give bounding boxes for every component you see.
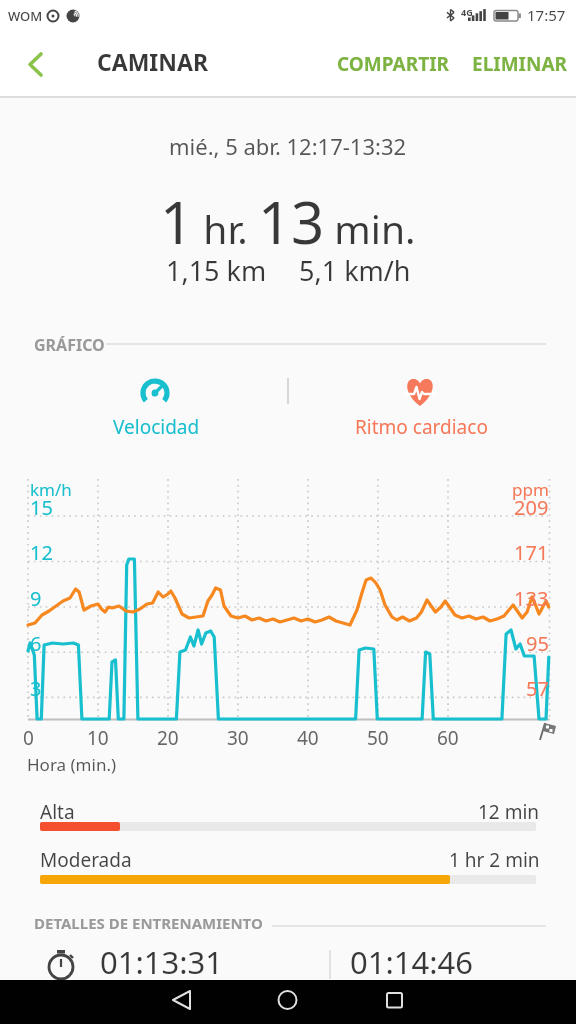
staticText: 171 xyxy=(514,539,549,566)
staticText: 0 xyxy=(23,725,34,751)
staticText: COMPARTIR xyxy=(337,51,450,77)
button[interactable]: Ritmo cardiaco xyxy=(352,366,490,440)
button[interactable] xyxy=(384,980,576,1024)
staticText: Alta xyxy=(40,799,75,825)
button[interactable] xyxy=(192,980,384,1024)
staticText: 4G xyxy=(461,6,473,18)
staticText: 01:14:46 xyxy=(350,941,474,983)
staticText: 20 xyxy=(157,725,179,751)
staticText: Velocidad xyxy=(113,414,200,440)
staticText: 209 xyxy=(514,494,549,521)
staticText: Hora (min.) xyxy=(27,753,117,776)
staticText: 1,15 km xyxy=(166,252,267,289)
staticText: 1 hr. 13 min. xyxy=(160,182,416,261)
button[interactable]: COMPARTIR xyxy=(330,46,443,72)
staticText: 6 xyxy=(30,630,42,657)
staticText: 12 min xyxy=(478,799,540,825)
staticText: 30 xyxy=(227,725,249,751)
staticText: 3 xyxy=(30,675,42,702)
staticText: 9 xyxy=(30,585,42,612)
button[interactable] xyxy=(14,42,60,88)
staticText: 15 xyxy=(30,494,53,521)
staticText: km/h xyxy=(30,478,72,501)
staticText: ppm xyxy=(512,478,549,501)
staticText: 40 xyxy=(297,725,319,751)
staticText: 95 xyxy=(526,630,549,657)
staticText: GRÁFICO xyxy=(34,334,105,356)
staticText: CAMINAR xyxy=(97,46,209,77)
staticText: 133 xyxy=(514,585,549,612)
button[interactable]: ELIMINAR xyxy=(465,46,561,72)
staticText: WOM xyxy=(8,7,43,25)
staticText: DETALLES DE ENTRENAMIENTO xyxy=(34,913,263,933)
staticText: 5,1 km/h xyxy=(299,252,411,289)
staticText: Ritmo cardiaco xyxy=(355,414,488,440)
staticText: 01:13:31 xyxy=(100,941,224,983)
button[interactable] xyxy=(0,980,192,1024)
staticText: Moderada xyxy=(40,847,132,873)
staticText: 17:57 xyxy=(527,5,566,25)
staticText: 12 xyxy=(30,539,53,566)
staticText: mié., 5 abr. 12:17-13:32 xyxy=(169,131,407,161)
staticText: 60 xyxy=(437,725,459,751)
staticText: 50 xyxy=(367,725,389,751)
button[interactable]: Velocidad xyxy=(90,366,222,440)
staticText: ELIMINAR xyxy=(472,51,568,77)
staticText: 10 xyxy=(87,725,109,751)
staticText: 1 hr 2 min xyxy=(449,847,540,873)
staticText: 57 xyxy=(526,675,549,702)
